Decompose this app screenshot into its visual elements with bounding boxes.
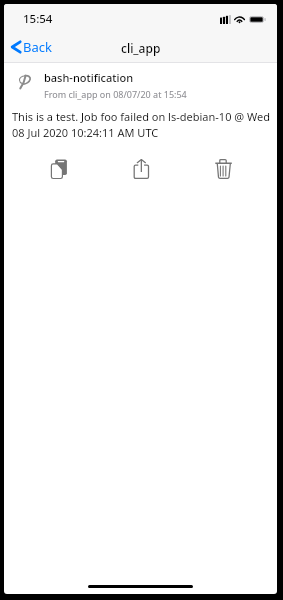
button[interactable]: Delete: [182, 156, 264, 182]
staticText: Back: [23, 38, 52, 56]
button[interactable]: Back: [4, 33, 60, 61]
staticText: 15:54: [23, 11, 53, 27]
staticText: From cli_app on 08/07/20 at 15:54: [44, 88, 187, 100]
staticText: This is a test. Job foo failed on ls-deb…: [12, 109, 275, 140]
button[interactable]: Share: [100, 156, 182, 182]
staticText: bash-notification: [44, 70, 134, 85]
staticText: cli_app: [121, 40, 161, 56]
button[interactable]: Copy: [17, 156, 100, 182]
